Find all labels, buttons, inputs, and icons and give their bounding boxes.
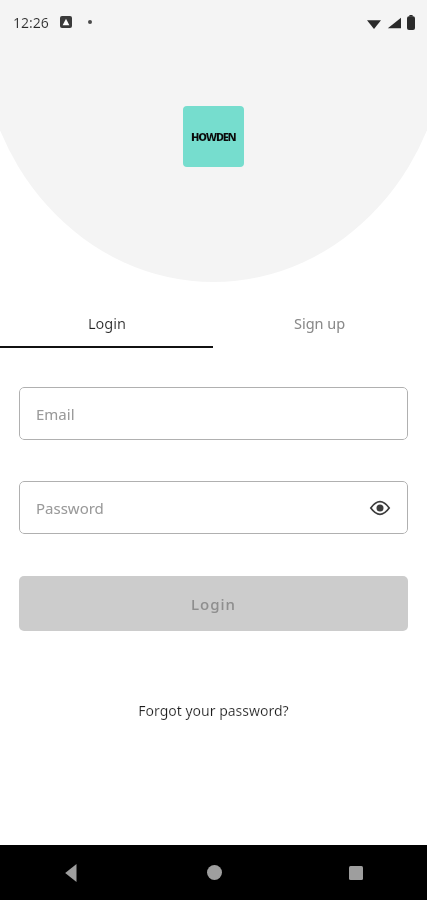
- staticText: HOWDEN: [191, 129, 236, 144]
- button[interactable]: Show password: [365, 493, 395, 523]
- staticText: Forgot your password?: [138, 701, 289, 720]
- button[interactable]: Login: [0, 300, 213, 346]
- button[interactable]: Sign up: [213, 300, 427, 346]
- button[interactable]: Login: [19, 576, 408, 631]
- staticText: Sign up: [294, 313, 346, 333]
- staticText: 12:26: [13, 13, 49, 32]
- staticText: Login: [88, 313, 126, 333]
- button[interactable]: Recent apps: [285, 845, 427, 900]
- button[interactable]: Back: [0, 845, 143, 900]
- staticText: Login: [191, 594, 236, 614]
- staticText: Email: [36, 404, 75, 424]
- button[interactable]: Home: [143, 845, 285, 900]
- button[interactable]: Forgot your password?: [126, 695, 301, 726]
- button[interactable]: Password: [19, 481, 408, 534]
- staticText: Password: [36, 498, 104, 518]
- button[interactable]: Email: [19, 387, 408, 440]
